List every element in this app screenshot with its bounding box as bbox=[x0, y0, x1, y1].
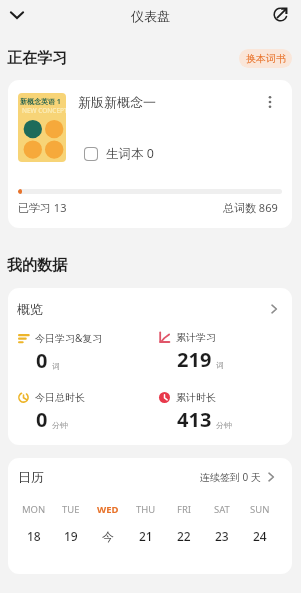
button[interactable]: 换本词书 bbox=[239, 49, 292, 68]
staticText: SUN bbox=[250, 503, 270, 516]
staticText: 0 bbox=[36, 347, 48, 374]
button[interactable]: 23 bbox=[203, 526, 241, 546]
staticText: 分钟 bbox=[216, 420, 232, 430]
button[interactable]: 18 bbox=[15, 526, 52, 546]
staticText: 新版新概念一 bbox=[78, 94, 156, 110]
staticText: 总词数 869 bbox=[223, 200, 278, 215]
button[interactable]: 生词本 0 bbox=[84, 145, 154, 162]
staticText: 413 bbox=[177, 406, 212, 433]
staticText: 23 bbox=[215, 528, 229, 544]
button[interactable]: 日历 bbox=[8, 466, 292, 488]
staticText: 换本词书 bbox=[246, 52, 286, 65]
staticText: 分钟 bbox=[52, 420, 68, 430]
staticText: 今日总时长 bbox=[35, 391, 85, 404]
staticText: FRI bbox=[177, 503, 192, 516]
staticText: 累计学习 bbox=[176, 331, 216, 344]
staticText: THU bbox=[136, 503, 156, 516]
button[interactable]: Collapse bbox=[4, 2, 30, 28]
staticText: SAT bbox=[214, 503, 230, 516]
staticText: 新概念英语 1 bbox=[20, 97, 61, 107]
button[interactable]: 今 bbox=[89, 526, 127, 546]
staticText: 今 bbox=[102, 529, 114, 544]
staticText: 词 bbox=[52, 361, 60, 371]
staticText: 累计时长 bbox=[176, 391, 216, 404]
staticText: TUE bbox=[62, 503, 80, 516]
staticText: NEW CONCEPT bbox=[22, 106, 66, 115]
staticText: 18 bbox=[27, 528, 41, 544]
staticText: 0 bbox=[36, 406, 48, 433]
button[interactable]: Share bbox=[267, 1, 293, 27]
staticText: 我的数据 bbox=[7, 256, 67, 275]
staticText: 正在学习 bbox=[7, 49, 67, 68]
staticText: 生词本 0 bbox=[106, 145, 154, 162]
staticText: 连续签到 0 天 bbox=[200, 470, 261, 484]
button[interactable]: More options bbox=[260, 92, 279, 111]
staticText: 概览 bbox=[17, 301, 43, 317]
button[interactable]: 19 bbox=[52, 526, 89, 546]
staticText: 词 bbox=[216, 360, 224, 370]
staticText: WED bbox=[97, 503, 119, 516]
button[interactable]: 22 bbox=[165, 526, 203, 546]
staticText: MON bbox=[22, 503, 46, 516]
button[interactable]: 概览 bbox=[8, 298, 292, 320]
button[interactable]: 24 bbox=[241, 526, 279, 546]
staticText: 19 bbox=[64, 528, 78, 544]
staticText: 24 bbox=[253, 528, 267, 544]
button[interactable]: 新概念英语 1 bbox=[8, 80, 292, 228]
staticText: 已学习 13 bbox=[18, 200, 67, 215]
staticText: 日历 bbox=[18, 469, 44, 485]
staticText: 21 bbox=[139, 528, 153, 544]
staticText: 今日学习&复习 bbox=[35, 331, 103, 345]
button[interactable]: 21 bbox=[127, 526, 165, 546]
staticText: 22 bbox=[177, 528, 191, 544]
staticText: 219 bbox=[177, 346, 212, 373]
staticText: 仪表盘 bbox=[131, 8, 170, 24]
